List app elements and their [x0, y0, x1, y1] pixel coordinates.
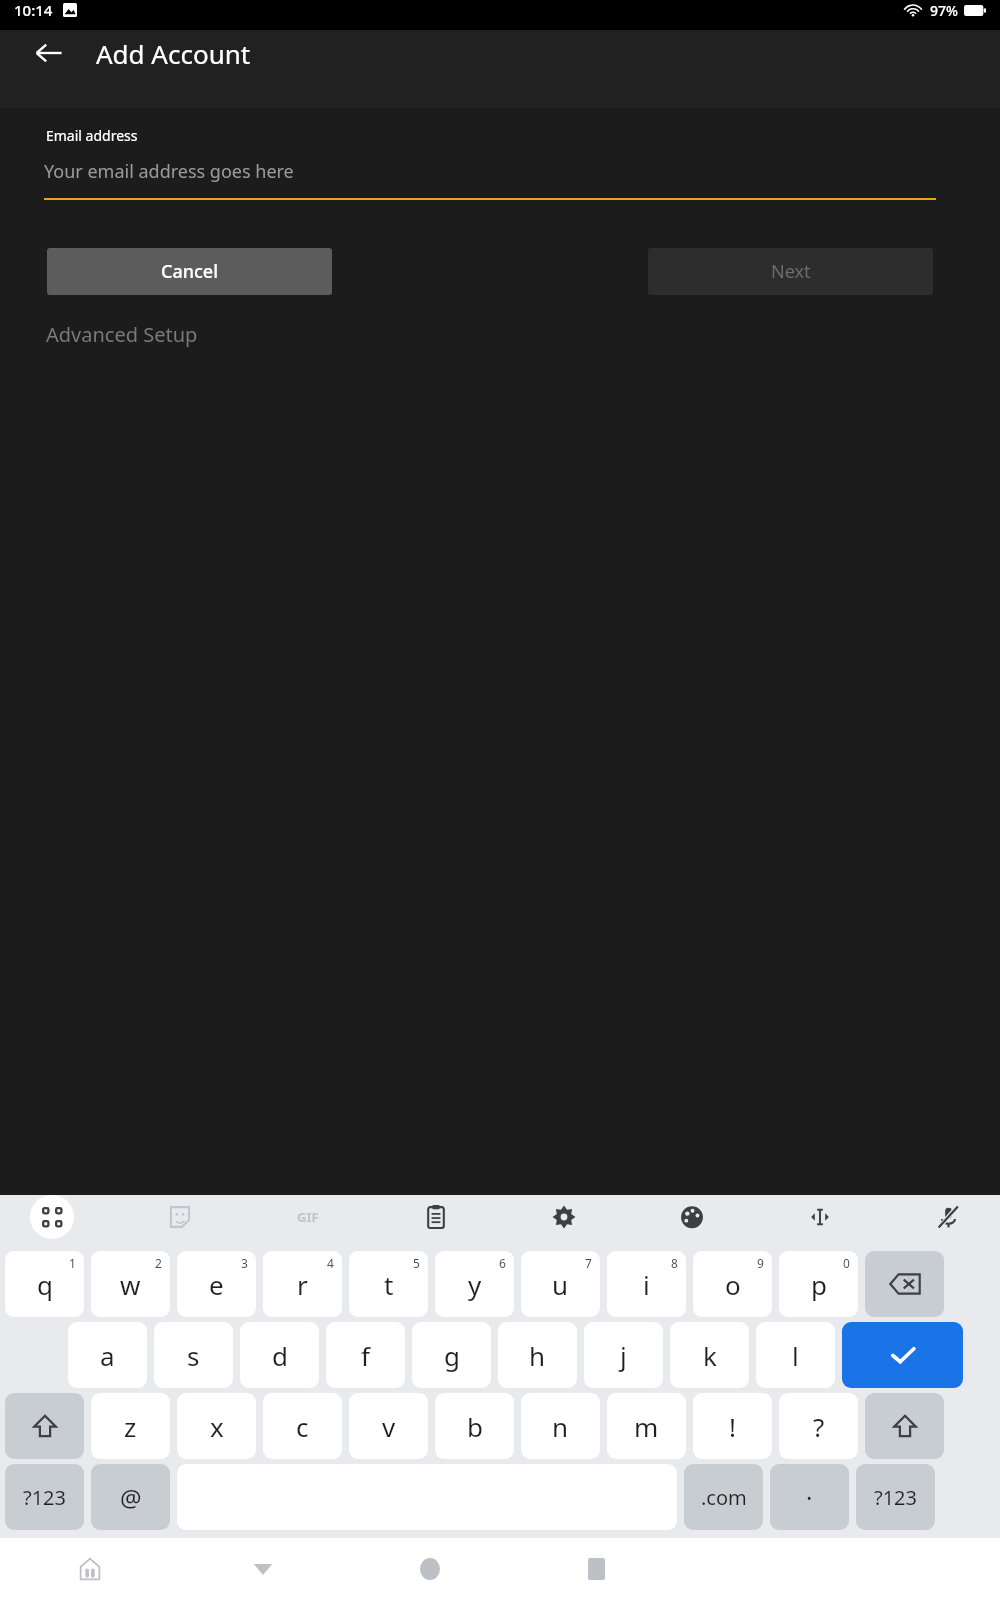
- button[interactable]: Shift: [865, 1393, 944, 1459]
- staticText: y: [468, 1267, 482, 1302]
- staticText: 0: [843, 1255, 850, 1271]
- button[interactable]: Back: [180, 1538, 346, 1600]
- staticText: 7: [585, 1255, 592, 1271]
- staticText: z: [124, 1409, 137, 1444]
- button[interactable]: m: [607, 1393, 686, 1459]
- staticText: @: [120, 1481, 142, 1514]
- staticText: 10:14: [14, 0, 53, 20]
- button[interactable]: GIF: [286, 1195, 330, 1239]
- staticText: 5: [413, 1255, 420, 1271]
- button[interactable]: s: [154, 1322, 233, 1388]
- button[interactable]: ?: [779, 1393, 858, 1459]
- staticText: s: [187, 1338, 200, 1373]
- staticText: ?123: [23, 1484, 66, 1511]
- button[interactable]: x: [177, 1393, 256, 1459]
- button[interactable]: Backspace: [865, 1251, 944, 1317]
- button[interactable]: d: [240, 1322, 319, 1388]
- button[interactable]: Keyboard layouts: [30, 1195, 74, 1239]
- staticText: o: [725, 1267, 741, 1302]
- staticText: Cancel: [161, 259, 219, 284]
- staticText: p: [811, 1267, 827, 1302]
- staticText: w: [120, 1267, 141, 1302]
- button[interactable]: u: [521, 1251, 600, 1317]
- button[interactable]: Home: [346, 1538, 513, 1600]
- staticText: b: [467, 1409, 483, 1444]
- staticText: 2: [155, 1255, 162, 1271]
- staticText: .com: [701, 1484, 747, 1511]
- button[interactable]: Themes: [670, 1195, 714, 1239]
- button[interactable]: .com: [684, 1464, 763, 1530]
- staticText: i: [643, 1267, 650, 1302]
- staticText: g: [444, 1338, 460, 1373]
- staticText: v: [382, 1409, 396, 1444]
- staticText: ·: [806, 1481, 813, 1514]
- staticText: ?: [813, 1409, 825, 1444]
- button[interactable]: Shift: [5, 1393, 84, 1459]
- button[interactable]: c: [263, 1393, 342, 1459]
- button[interactable]: l: [756, 1322, 835, 1388]
- button[interactable]: Clipboard: [414, 1195, 458, 1239]
- staticText: GIF: [297, 1208, 319, 1226]
- button[interactable]: Enter: [842, 1322, 963, 1388]
- button[interactable]: ·: [770, 1464, 849, 1530]
- button[interactable]: n: [521, 1393, 600, 1459]
- button[interactable]: j: [584, 1322, 663, 1388]
- button[interactable]: Your email address goes here: [44, 159, 936, 200]
- button[interactable]: i: [607, 1251, 686, 1317]
- button[interactable]: Stickers: [158, 1195, 202, 1239]
- staticText: !: [729, 1409, 736, 1444]
- button[interactable]: h: [498, 1322, 577, 1388]
- staticText: t: [384, 1267, 394, 1302]
- button[interactable]: Voice input off: [926, 1195, 970, 1239]
- staticText: Email address: [46, 126, 138, 145]
- button[interactable]: y: [435, 1251, 514, 1317]
- button[interactable]: q: [5, 1251, 84, 1317]
- button[interactable]: o: [693, 1251, 772, 1317]
- staticText: Advanced Setup: [46, 321, 198, 348]
- button[interactable]: Next: [648, 248, 933, 295]
- staticText: c: [296, 1409, 309, 1444]
- staticText: 6: [499, 1255, 506, 1271]
- button[interactable]: ?123: [5, 1464, 84, 1530]
- button[interactable]: v: [349, 1393, 428, 1459]
- button[interactable]: g: [412, 1322, 491, 1388]
- staticText: l: [792, 1338, 799, 1373]
- button[interactable]: e: [177, 1251, 256, 1317]
- staticText: 8: [671, 1255, 678, 1271]
- button[interactable]: Cancel: [47, 248, 332, 295]
- button[interactable]: !: [693, 1393, 772, 1459]
- button[interactable]: f: [326, 1322, 405, 1388]
- button[interactable]: b: [435, 1393, 514, 1459]
- button[interactable]: @: [91, 1464, 170, 1530]
- button[interactable]: w: [91, 1251, 170, 1317]
- staticText: j: [620, 1338, 627, 1373]
- button[interactable]: Advanced Setup: [46, 321, 198, 348]
- button[interactable]: ?123: [856, 1464, 935, 1530]
- staticText: r: [297, 1267, 308, 1302]
- staticText: 4: [327, 1255, 334, 1271]
- staticText: 1: [69, 1255, 76, 1271]
- staticText: Your email address goes here: [44, 159, 294, 184]
- staticText: q: [37, 1267, 53, 1302]
- button[interactable]: Keyboard switcher: [0, 1538, 180, 1600]
- staticText: 97%: [930, 1, 958, 20]
- button[interactable]: Settings: [542, 1195, 586, 1239]
- button[interactable]: Recent apps: [513, 1538, 680, 1600]
- staticText: d: [272, 1338, 288, 1373]
- button[interactable]: a: [68, 1322, 147, 1388]
- button[interactable]: k: [670, 1322, 749, 1388]
- staticText: m: [634, 1409, 659, 1444]
- staticText: f: [361, 1338, 370, 1373]
- button[interactable]: Text editing: [798, 1195, 842, 1239]
- button[interactable]: Back: [26, 30, 72, 76]
- staticText: x: [210, 1409, 224, 1444]
- button[interactable]: z: [91, 1393, 170, 1459]
- staticText: h: [529, 1338, 546, 1373]
- button[interactable]: p: [779, 1251, 858, 1317]
- button[interactable]: r: [263, 1251, 342, 1317]
- button[interactable]: t: [349, 1251, 428, 1317]
- staticText: u: [552, 1267, 569, 1302]
- staticText: 9: [757, 1255, 764, 1271]
